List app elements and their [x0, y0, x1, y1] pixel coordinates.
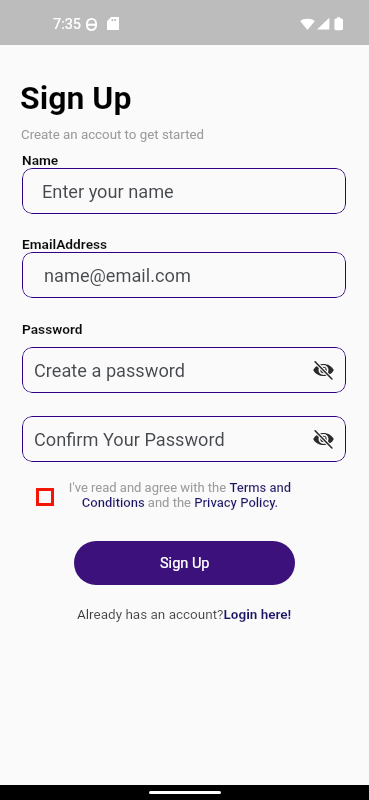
staticText: I've read and agree with the Terms and C…	[64, 480, 296, 510]
staticText: Sign Up	[160, 555, 210, 572]
staticText: EmailAddress	[22, 236, 108, 252]
staticText: Password	[22, 321, 83, 337]
button[interactable]: Already has an account?Login here!	[77, 606, 292, 622]
button[interactable]: Create a password	[22, 347, 346, 393]
staticText: Sign Up	[20, 79, 132, 117]
staticText: 7:35	[53, 16, 81, 33]
button[interactable]: Toggle password visibility	[310, 357, 336, 383]
button[interactable]: Sign Up	[74, 541, 295, 585]
staticText: Name	[22, 152, 59, 168]
button[interactable]: Toggle password visibility	[310, 426, 336, 452]
staticText: Confirm Your Password	[34, 429, 225, 450]
button[interactable]: Confirm Your Password	[22, 416, 346, 462]
staticText: Create a password	[34, 360, 186, 381]
staticText: name@email.com	[44, 265, 191, 286]
button[interactable]: Agree to terms and conditions	[36, 488, 54, 506]
button[interactable]: name@email.com	[22, 252, 346, 298]
staticText: Enter your name	[42, 181, 174, 202]
button[interactable]: Enter your name	[22, 168, 346, 214]
staticText: Create an accout to get started	[21, 127, 205, 143]
